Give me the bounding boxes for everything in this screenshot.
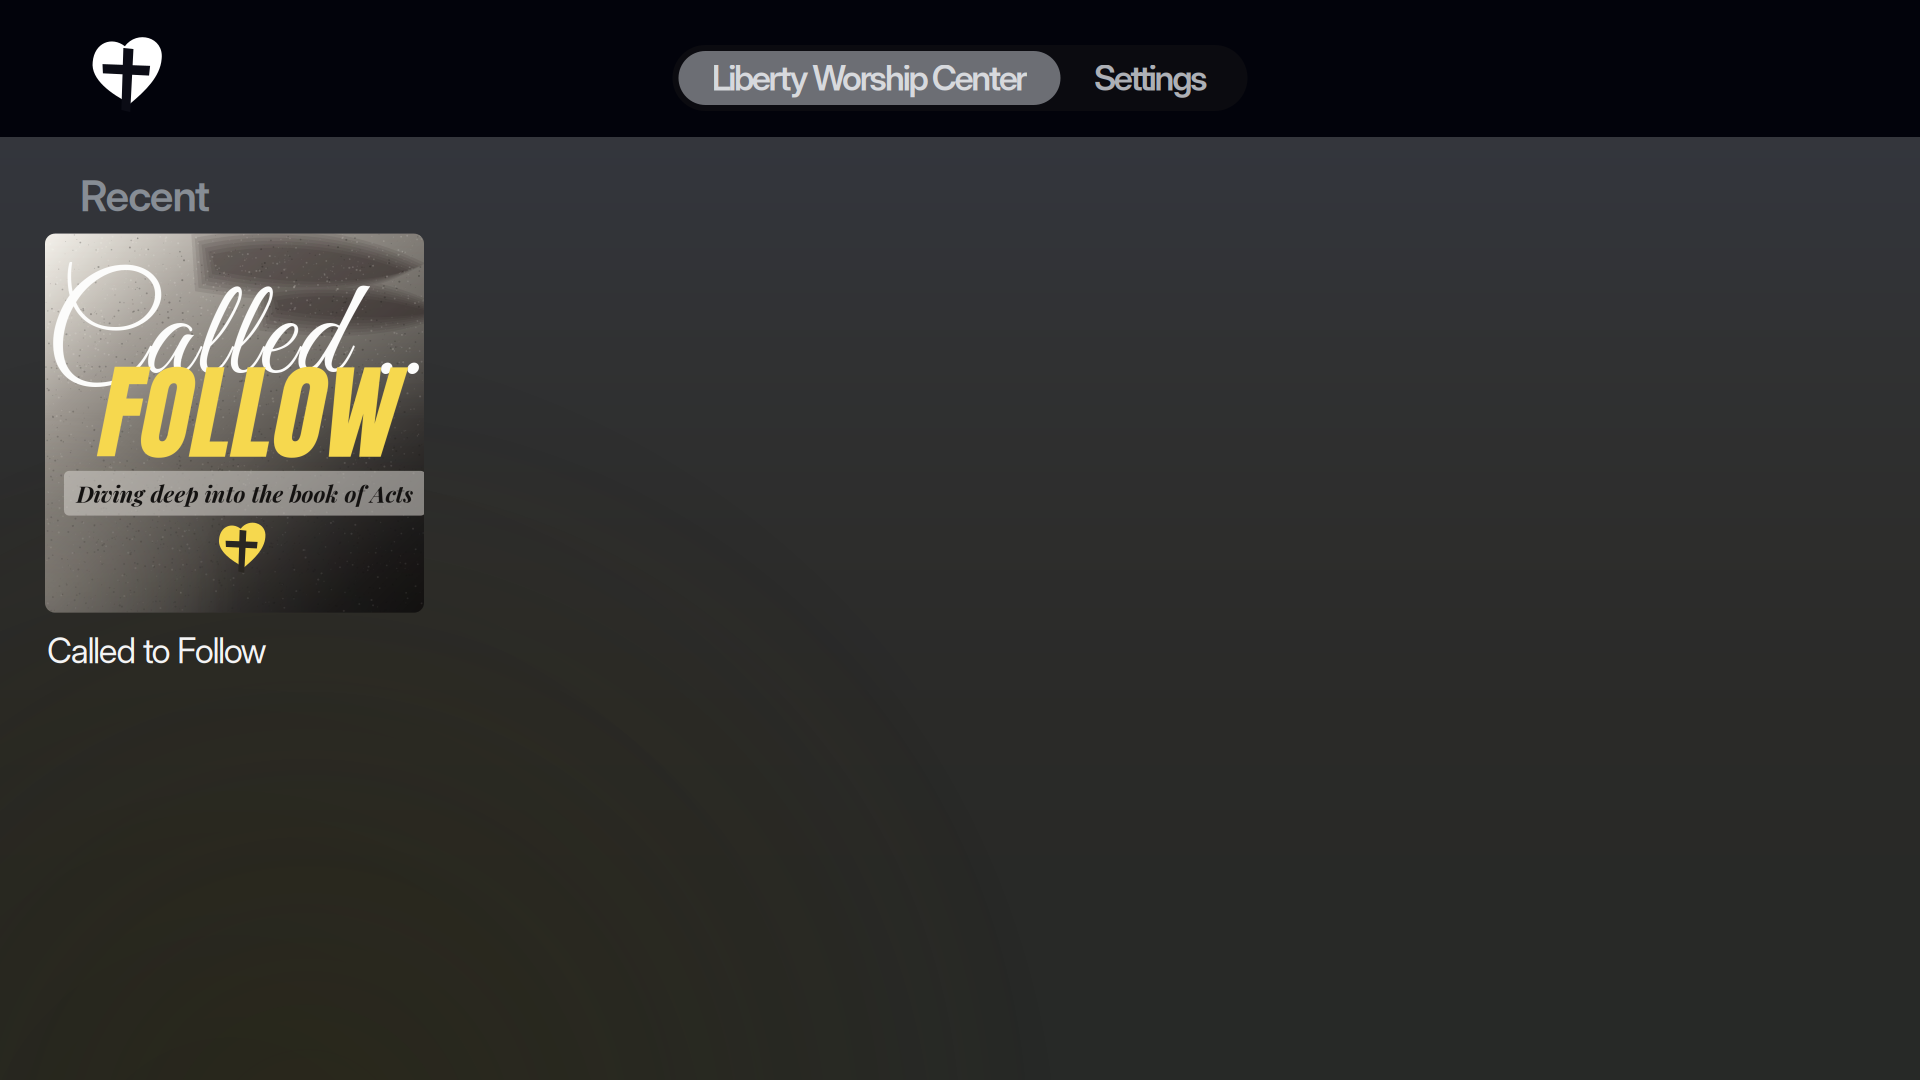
button[interactable]: Liberty Worship Center home — [0, 0, 162, 104]
staticText: Diving deep into the book of Acts — [76, 478, 413, 508]
staticText: Liberty Worship Center — [712, 57, 1027, 99]
staticText: Settings — [1094, 57, 1208, 99]
staticText: Called to Follow — [47, 630, 266, 671]
button[interactable]: Liberty Worship Center — [678, 51, 1060, 105]
button[interactable]: Called to — [0, 222, 424, 671]
staticText: Called to — [45, 256, 448, 427]
button[interactable]: Settings — [1060, 51, 1241, 105]
staticText: FOLLOW — [93, 334, 392, 491]
staticText: Recent — [80, 170, 210, 222]
